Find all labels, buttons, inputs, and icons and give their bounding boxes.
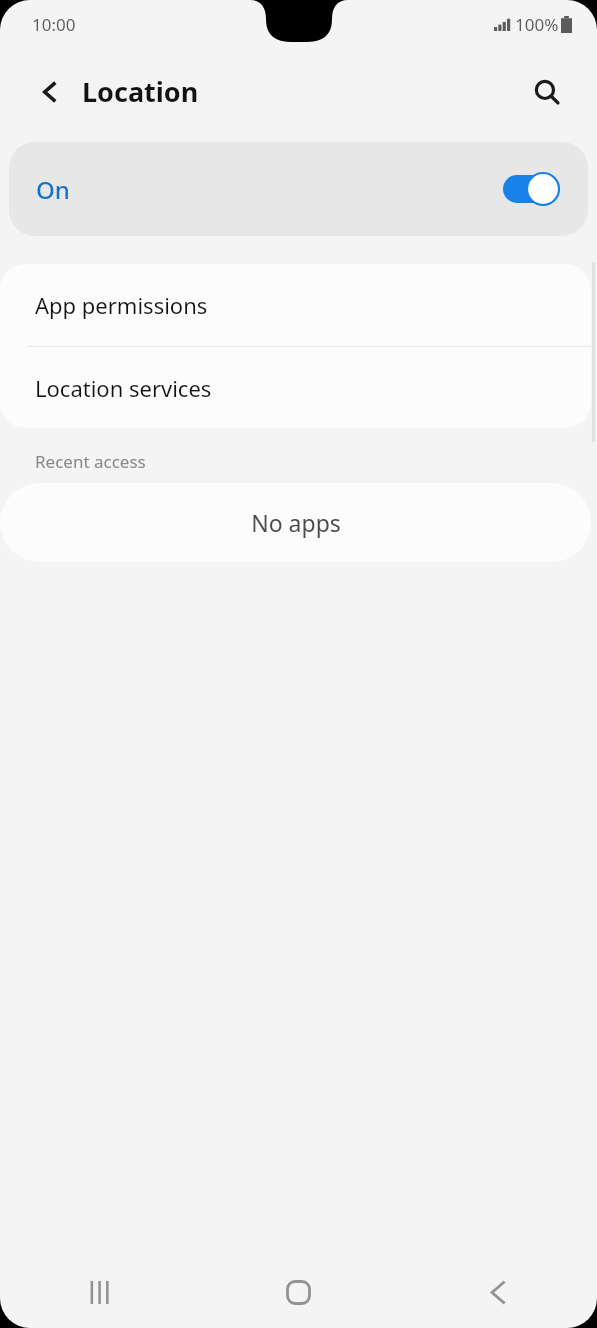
button[interactable]: On xyxy=(9,142,588,236)
button[interactable]: No apps xyxy=(0,483,591,562)
button[interactable]: Home xyxy=(199,1256,398,1328)
staticText: App permissions xyxy=(35,290,208,320)
button[interactable]: Navigate up xyxy=(22,64,78,120)
staticText: Location xyxy=(82,73,199,110)
button[interactable]: Location services xyxy=(0,347,591,428)
staticText: Recent access xyxy=(35,450,146,473)
staticText: 10:00 xyxy=(32,13,76,36)
button[interactable]: Back xyxy=(398,1256,597,1328)
button[interactable]: App permissions xyxy=(0,264,591,346)
staticText: Location services xyxy=(35,373,212,403)
staticText: On xyxy=(36,173,70,206)
button[interactable]: Recent apps xyxy=(0,1256,199,1328)
staticText: No apps xyxy=(251,507,341,538)
button[interactable]: Search xyxy=(519,64,575,120)
staticText: 100% xyxy=(515,13,559,36)
